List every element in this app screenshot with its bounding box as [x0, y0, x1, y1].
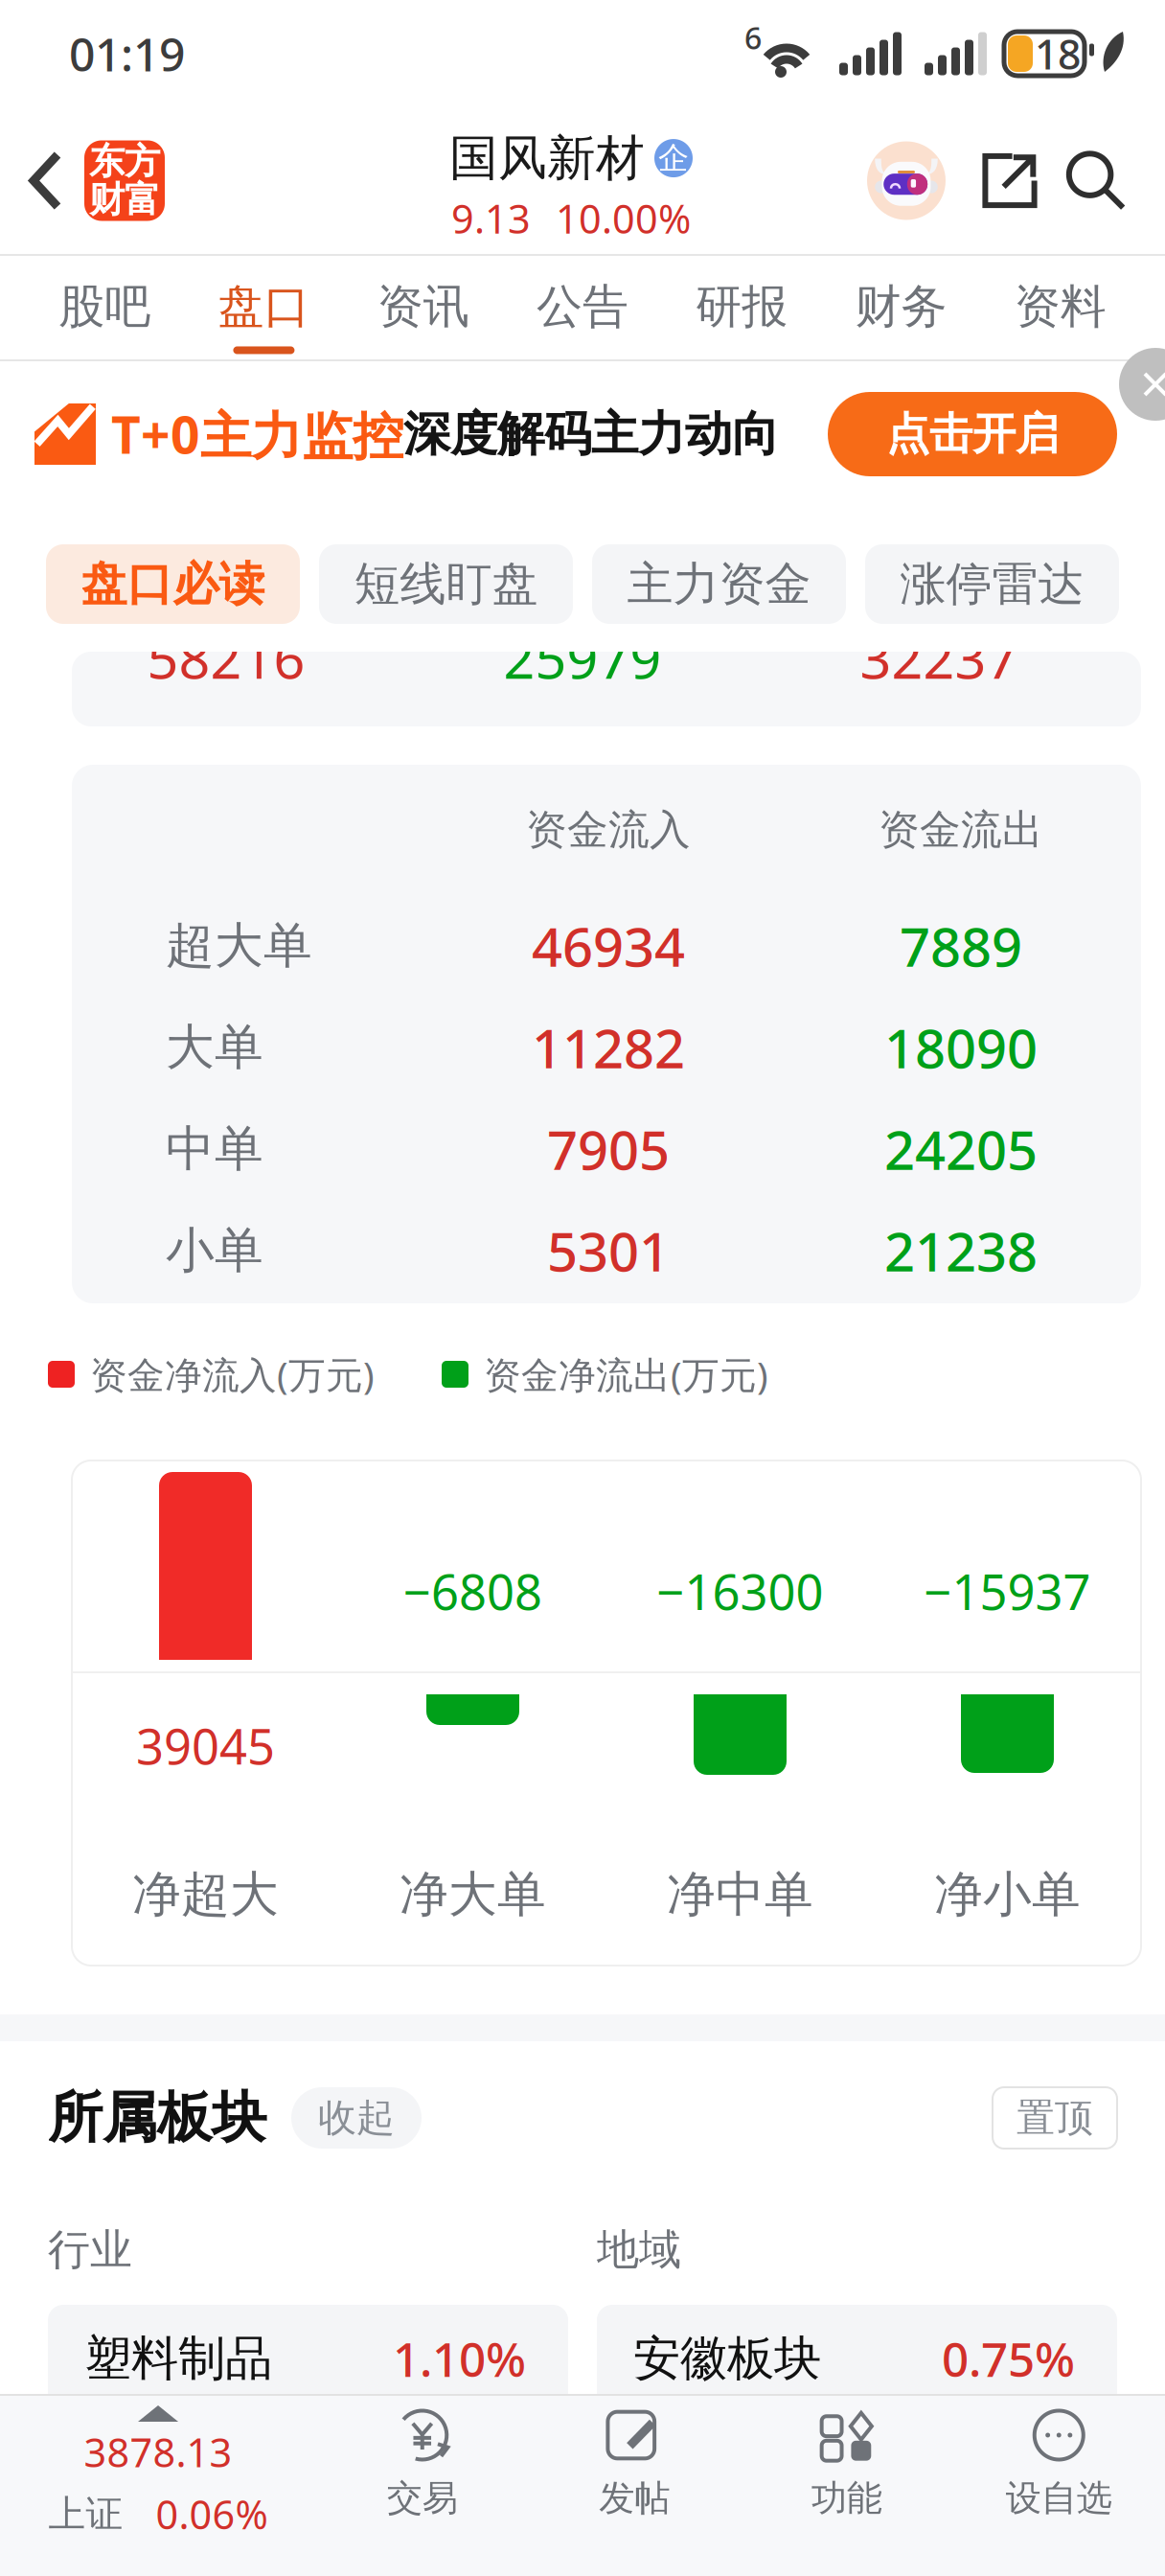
button[interactable]: 设自选: [953, 2396, 1165, 2576]
staticText: 企: [658, 139, 689, 177]
button[interactable]: 安徽板块: [597, 2305, 1117, 2412]
staticText: 0.75%: [942, 2327, 1075, 2390]
button[interactable]: 主力资金: [592, 544, 846, 624]
staticText: 3878.13: [84, 2426, 232, 2478]
button[interactable]: Shanghai Composite index: [0, 2396, 316, 2576]
staticText: 盘口必读: [81, 556, 265, 612]
staticText: 净小单: [934, 1865, 1081, 1924]
staticText: 7905: [547, 1113, 670, 1185]
button[interactable]: 涨停雷达: [865, 544, 1119, 624]
button[interactable]: 置顶: [993, 2087, 1117, 2149]
button[interactable]: 发帖: [528, 2396, 741, 2576]
staticText: 股吧: [59, 278, 151, 335]
staticText: 32237: [860, 621, 1018, 694]
staticText: 塑料制品: [84, 2329, 272, 2387]
button[interactable]: 资讯: [344, 256, 503, 359]
button[interactable]: 收起: [291, 2087, 422, 2149]
staticText: 24205: [884, 1113, 1038, 1185]
staticText: 18: [1035, 27, 1081, 81]
staticText: 置顶: [1017, 2094, 1093, 2141]
staticText: 7889: [900, 910, 1022, 982]
button[interactable]: Back: [0, 108, 84, 253]
staticText: 净超大: [132, 1865, 279, 1924]
staticText: 11282: [532, 1012, 685, 1083]
staticText: 涨停雷达: [900, 556, 1084, 612]
button[interactable]: 功能: [741, 2396, 953, 2576]
button[interactable]: 研报: [662, 256, 821, 359]
staticText: 上证: [48, 2491, 123, 2537]
staticText: 资金净流出(万元): [484, 1350, 768, 1399]
staticText: 国风新材: [449, 128, 645, 188]
staticText: T+0主力监控: [111, 400, 403, 468]
staticText: 盘口: [218, 278, 310, 335]
staticText: 收起: [318, 2094, 395, 2141]
staticText: 主力资金: [627, 556, 811, 612]
staticText: 6: [744, 17, 762, 58]
staticText: 功能: [811, 2476, 882, 2520]
staticText: 39045: [136, 1713, 275, 1778]
button[interactable]: 公告: [503, 256, 662, 359]
staticText: 资金净流入(万元): [90, 1350, 375, 1399]
staticText: 01:19: [69, 23, 185, 84]
staticText: 46934: [532, 910, 685, 982]
staticText: 超大单: [166, 916, 312, 976]
staticText: 资金流出: [879, 805, 1043, 855]
button[interactable]: Share: [950, 150, 1065, 211]
staticText: 9.13: [451, 192, 531, 244]
staticText: 地域: [597, 2224, 681, 2276]
staticText: 10.00%: [556, 192, 691, 244]
staticText: 设自选: [1006, 2476, 1112, 2520]
staticText: −6808: [403, 1559, 542, 1623]
staticText: 资料: [1014, 278, 1106, 335]
button[interactable]: East Money home: [84, 140, 165, 221]
button[interactable]: AI assistant: [862, 137, 950, 225]
button[interactable]: 塑料制品: [48, 2305, 568, 2412]
staticText: 21238: [884, 1215, 1038, 1286]
staticText: 财富: [89, 178, 160, 222]
staticText: 5301: [547, 1215, 670, 1286]
staticText: 公告: [537, 278, 628, 335]
staticText: 净大单: [400, 1865, 546, 1924]
staticText: −15937: [924, 1559, 1091, 1623]
staticText: 发帖: [599, 2476, 670, 2520]
staticText: 大单: [166, 1018, 263, 1077]
button[interactable]: 财务: [821, 256, 981, 359]
staticText: 所属板块: [48, 2084, 266, 2152]
staticText: 点击开启: [886, 407, 1059, 461]
button[interactable]: 交易: [316, 2396, 528, 2576]
staticText: 小单: [166, 1221, 263, 1280]
button[interactable]: Search: [1065, 150, 1165, 211]
staticText: 财务: [855, 278, 947, 335]
staticText: −16300: [657, 1559, 823, 1623]
staticText: 研报: [696, 278, 788, 335]
staticText: 交易: [387, 2476, 458, 2520]
staticText: 净中单: [667, 1865, 813, 1924]
staticText: 18090: [884, 1012, 1038, 1083]
staticText: 资讯: [377, 278, 469, 335]
button[interactable]: Close ad: [1092, 365, 1165, 438]
staticText: 25979: [503, 621, 662, 694]
button[interactable]: 股吧: [25, 256, 184, 359]
staticText: 深度解码主力动向: [403, 405, 779, 463]
button[interactable]: 盘口: [184, 256, 344, 359]
staticText: 安徽板块: [633, 2329, 821, 2387]
staticText: 东方: [89, 140, 160, 184]
staticText: 1.10%: [393, 2327, 526, 2390]
button[interactable]: 点击开启: [828, 392, 1117, 476]
button[interactable]: 资料: [981, 256, 1140, 359]
staticText: 0.06%: [156, 2488, 268, 2540]
button[interactable]: 短线盯盘: [319, 544, 573, 624]
button[interactable]: 盘口必读: [46, 544, 300, 624]
staticText: 短线盯盘: [354, 556, 538, 612]
staticText: 中单: [166, 1119, 263, 1179]
staticText: 行业: [48, 2224, 132, 2276]
staticText: 资金流入: [526, 805, 691, 855]
staticText: 58216: [147, 621, 305, 694]
